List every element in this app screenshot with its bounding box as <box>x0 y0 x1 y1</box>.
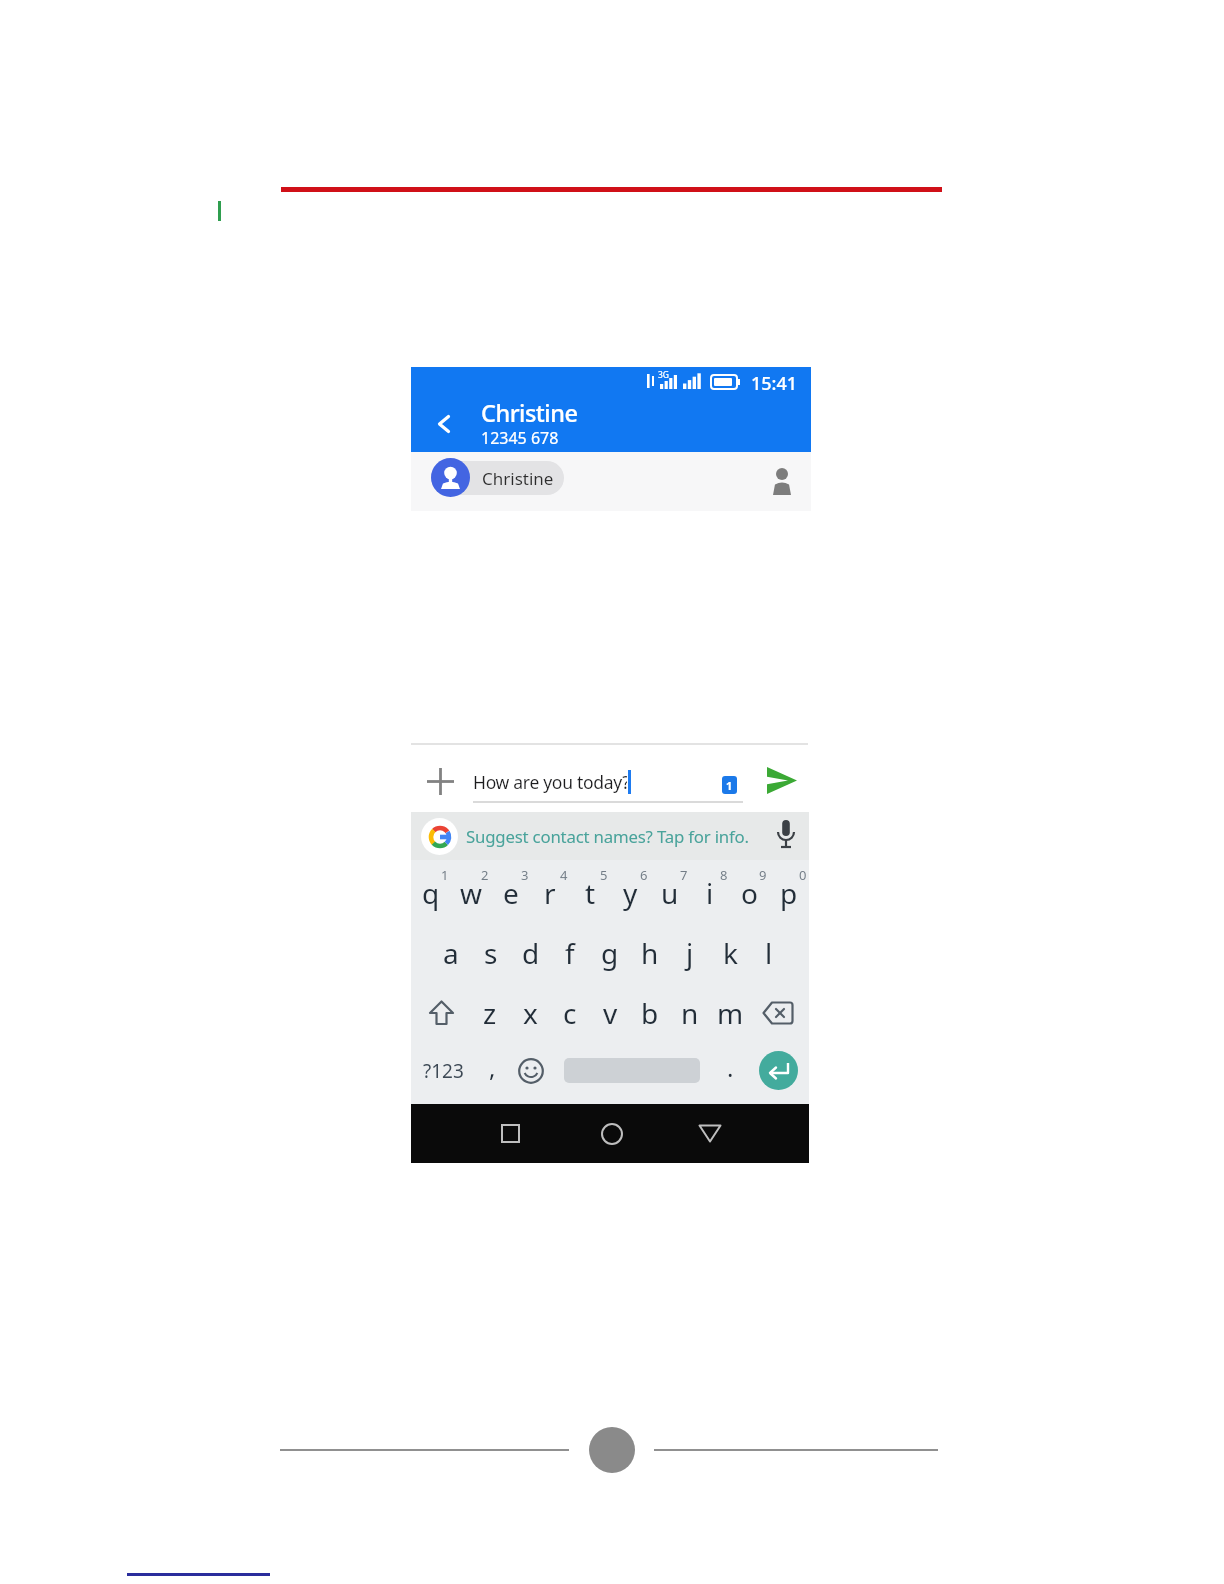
staticText: . <box>727 1051 734 1084</box>
button[interactable]: e <box>491 873 531 913</box>
staticText: 1 <box>726 778 733 793</box>
staticText: Suggest contact names? Tap for info. <box>466 825 749 848</box>
button[interactable] <box>517 1057 545 1085</box>
staticText: 6 <box>640 866 648 884</box>
button[interactable] <box>597 1119 626 1148</box>
staticText: o <box>741 874 758 912</box>
staticText: 0 <box>799 866 807 884</box>
staticText: f <box>565 934 575 972</box>
staticText: u <box>661 874 679 912</box>
button[interactable]: m <box>710 993 750 1033</box>
staticText: z <box>483 994 497 1032</box>
staticText: 8 <box>720 866 728 884</box>
button[interactable] <box>760 999 796 1027</box>
staticText: Christine <box>481 397 578 427</box>
staticText: 9 <box>759 866 767 884</box>
staticText: g <box>601 934 619 972</box>
staticText: y <box>623 874 638 912</box>
staticText: 15:41 <box>751 371 798 393</box>
button[interactable]: g <box>590 933 630 973</box>
button[interactable] <box>763 763 801 797</box>
staticText: j <box>686 934 694 972</box>
button[interactable]: d <box>511 933 551 973</box>
button[interactable]: p <box>769 873 809 913</box>
staticText: 2 <box>481 866 489 884</box>
button[interactable]: j <box>670 933 710 973</box>
button[interactable]: z <box>470 993 510 1033</box>
staticText: 1 <box>441 866 449 884</box>
button[interactable] <box>772 816 800 854</box>
staticText: l <box>765 934 773 972</box>
staticText: h <box>641 934 659 972</box>
button[interactable]: c <box>550 993 590 1033</box>
button[interactable] <box>759 1051 798 1090</box>
button[interactable]: u <box>650 873 690 913</box>
button[interactable]: f <box>550 933 590 973</box>
button[interactable] <box>425 997 457 1029</box>
staticText: n <box>681 994 699 1032</box>
staticText: m <box>717 994 744 1032</box>
staticText: How are you today? <box>473 770 627 794</box>
staticText: 12345 678 <box>481 427 559 447</box>
button[interactable] <box>428 406 460 442</box>
button[interactable]: . <box>718 1049 742 1085</box>
button[interactable]: n <box>670 993 710 1033</box>
button[interactable]: v <box>590 993 630 1033</box>
button[interactable]: x <box>510 993 550 1033</box>
staticText: s <box>484 934 498 972</box>
staticText: x <box>523 994 538 1032</box>
button[interactable]: i <box>690 873 730 913</box>
button[interactable] <box>694 1119 725 1148</box>
staticText: q <box>422 874 440 912</box>
staticText: p <box>780 874 798 912</box>
button[interactable] <box>424 765 456 797</box>
button[interactable]: h <box>630 933 670 973</box>
button[interactable]: r <box>530 873 570 913</box>
staticText: ?123 <box>423 1058 464 1084</box>
staticText: w <box>460 874 483 912</box>
staticText: 5 <box>600 866 608 884</box>
button[interactable]: b <box>630 993 670 1033</box>
staticText: e <box>503 874 519 912</box>
button[interactable]: Christine <box>431 461 564 495</box>
button[interactable]: q <box>411 873 451 913</box>
button[interactable] <box>766 464 798 498</box>
staticText: k <box>723 934 738 972</box>
button[interactable]: a <box>431 933 471 973</box>
button[interactable]: s <box>471 933 511 973</box>
button[interactable] <box>496 1119 525 1148</box>
button[interactable]: o <box>729 873 769 913</box>
staticText: c <box>563 994 577 1032</box>
staticText: r <box>544 874 556 912</box>
button[interactable]: y <box>610 873 650 913</box>
button[interactable]: w <box>451 873 491 913</box>
staticText: i <box>706 874 714 912</box>
button[interactable]: , <box>480 1049 504 1085</box>
staticText: , <box>489 1051 496 1084</box>
staticText: d <box>522 934 540 972</box>
button[interactable]: l <box>749 933 789 973</box>
button[interactable]: ?123 <box>417 1053 469 1089</box>
button[interactable] <box>411 812 809 860</box>
staticText: Christine <box>482 467 554 490</box>
staticText: b <box>641 994 659 1032</box>
staticText: v <box>603 994 618 1032</box>
button[interactable]: t <box>570 873 610 913</box>
staticText: a <box>443 934 459 972</box>
staticText: 4 <box>560 866 568 884</box>
staticText: 3G <box>658 369 670 381</box>
staticText: 3 <box>521 866 529 884</box>
button[interactable]: k <box>710 933 750 973</box>
staticText: 7 <box>680 866 688 884</box>
staticText: t <box>585 874 596 912</box>
